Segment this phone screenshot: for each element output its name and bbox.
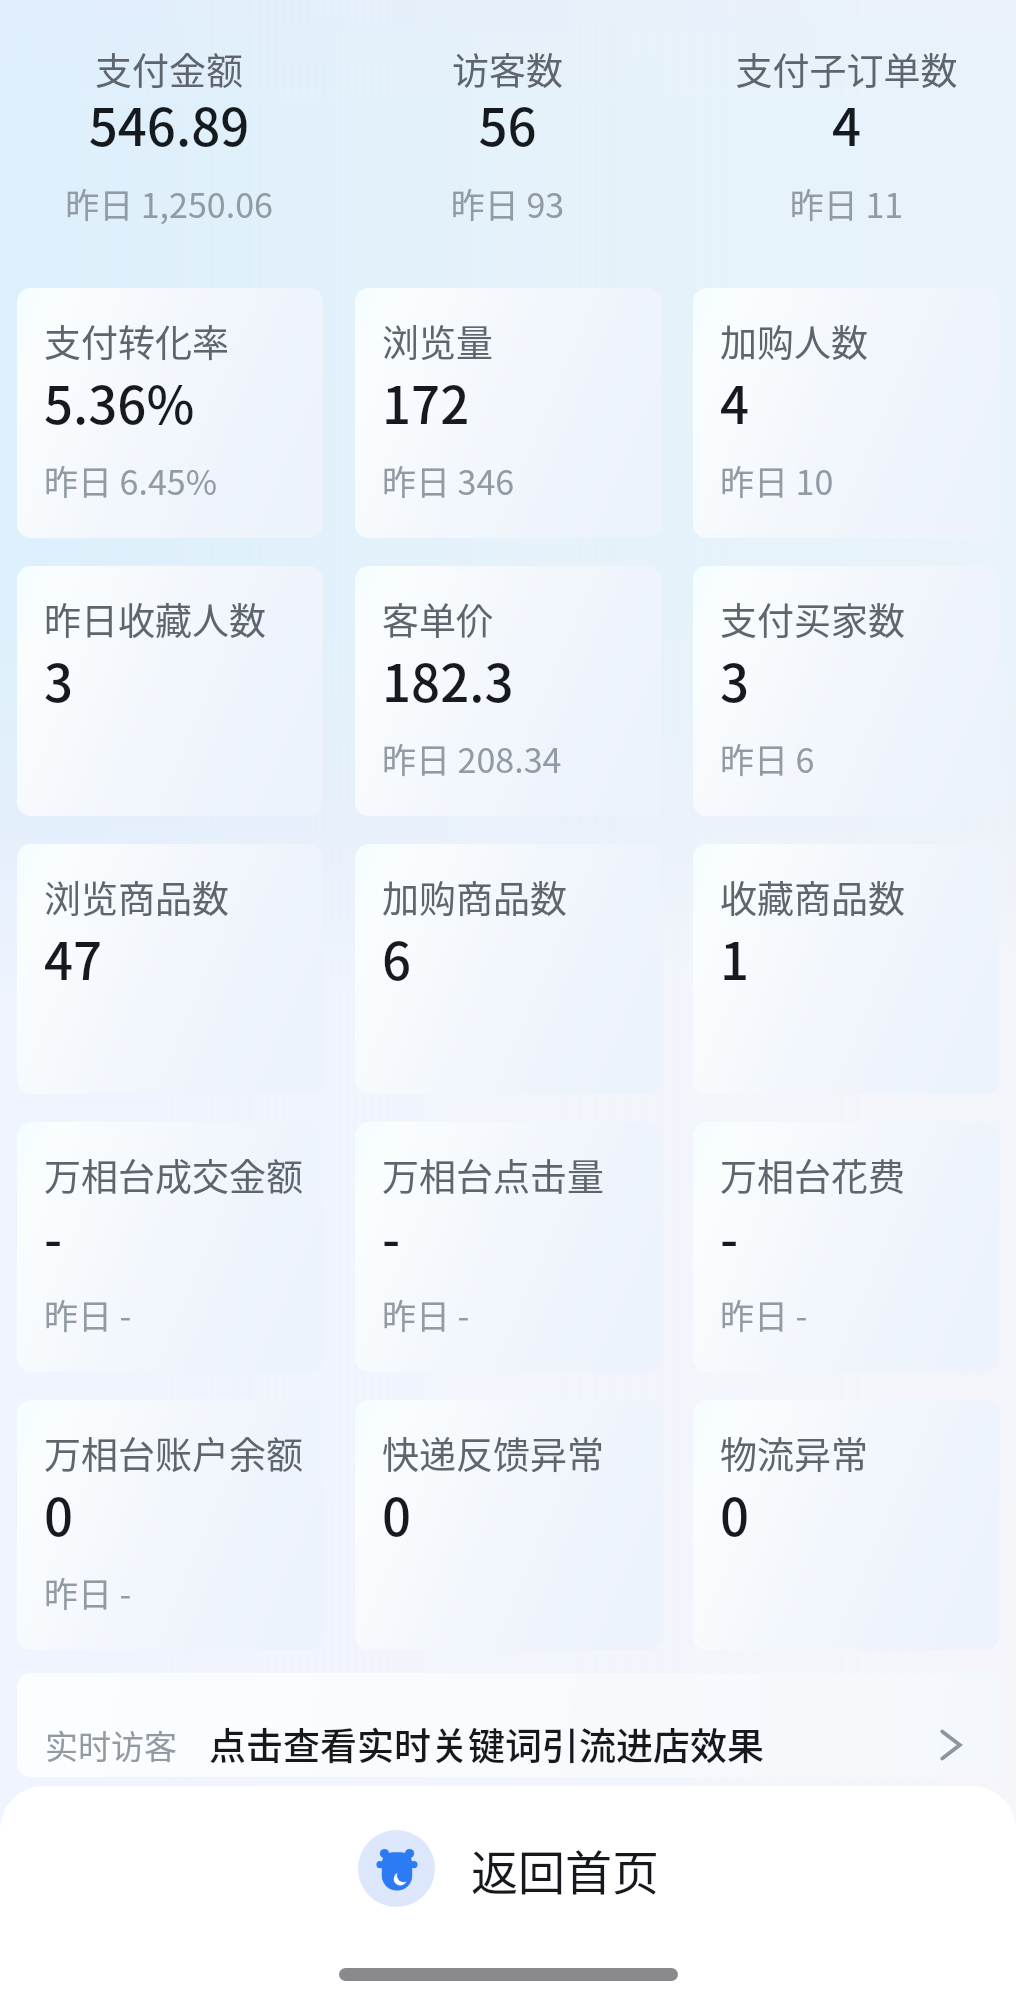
button[interactable]: 物流异常 (693, 1400, 999, 1650)
button[interactable]: 万相台点击量 (355, 1122, 661, 1372)
staticText: 0 (382, 1477, 412, 1551)
staticText: 4 (677, 87, 1016, 161)
staticText: 支付买家数 (720, 592, 905, 646)
button[interactable]: 浏览量 (355, 288, 661, 538)
staticText: 昨日 346 (382, 456, 515, 505)
staticText: 昨日 - (44, 1290, 132, 1339)
staticText: 收藏商品数 (720, 870, 905, 924)
staticText: 1 (720, 921, 750, 995)
button[interactable]: 支付转化率 (17, 288, 323, 538)
button[interactable]: 加购商品数 (355, 844, 661, 1094)
staticText: 昨日 - (382, 1290, 470, 1339)
staticText: 支付金额 (0, 42, 338, 96)
staticText: 昨日 6 (720, 734, 815, 783)
button[interactable]: 浏览商品数 (17, 844, 323, 1094)
staticText: 客单价 (382, 592, 493, 646)
staticText: 昨日 6.45% (44, 456, 217, 505)
staticText: 访客数 (338, 42, 677, 96)
staticText: - (44, 1199, 63, 1273)
staticText: 昨日 208.34 (382, 734, 562, 783)
staticText: 0 (720, 1477, 750, 1551)
staticText: 浏览商品数 (44, 870, 229, 924)
staticText: 昨日 10 (720, 456, 834, 505)
button[interactable]: 万相台花费 (693, 1122, 999, 1372)
staticText: 返回首页 (471, 1835, 659, 1903)
staticText: 546.89 (0, 87, 338, 161)
button[interactable]: 实时访客 (17, 1673, 999, 1777)
staticText: 万相台花费 (720, 1148, 905, 1202)
staticText: 3 (720, 643, 750, 717)
staticText: 物流异常 (720, 1426, 868, 1480)
button[interactable]: 支付金额 (0, 0, 338, 240)
staticText: 点击查看实时关键词引流进店效果 (209, 1717, 764, 1771)
staticText: 3 (44, 643, 74, 717)
staticText: 0 (44, 1477, 74, 1551)
staticText: 快递反馈异常 (382, 1426, 604, 1480)
staticText: 4 (720, 365, 750, 439)
staticText: 实时访客 (45, 1721, 177, 1769)
staticText: 浏览量 (382, 314, 493, 368)
other: 查看详情 (929, 1725, 969, 1765)
staticText: 昨日 1,250.06 (0, 179, 338, 228)
button[interactable]: 客单价 (355, 566, 661, 816)
staticText: 昨日 93 (338, 179, 677, 228)
button[interactable]: 加购人数 (693, 288, 999, 538)
staticText: 万相台点击量 (382, 1148, 604, 1202)
staticText: 5.36% (44, 365, 195, 439)
staticText: 47 (44, 921, 103, 995)
staticText: 昨日 - (720, 1290, 808, 1339)
button[interactable]: 返回首页 (348, 1824, 669, 1913)
button[interactable]: 快递反馈异常 (355, 1400, 661, 1650)
staticText: 加购人数 (720, 314, 868, 368)
button[interactable]: 昨日收藏人数 (17, 566, 323, 816)
staticText: - (382, 1199, 401, 1273)
staticText: 昨日 - (44, 1568, 132, 1617)
staticText: 加购商品数 (382, 870, 567, 924)
button[interactable]: 支付子订单数 (677, 0, 1016, 240)
staticText: 昨日收藏人数 (44, 592, 266, 646)
staticText: 支付转化率 (44, 314, 229, 368)
button[interactable]: 支付买家数 (693, 566, 999, 816)
button[interactable]: 万相台成交金额 (17, 1122, 323, 1372)
other: 返回首页 (358, 1830, 435, 1907)
staticText: 182.3 (382, 643, 514, 717)
button[interactable]: 访客数 (338, 0, 677, 240)
staticText: 昨日 11 (677, 179, 1016, 228)
staticText: 万相台成交金额 (44, 1148, 303, 1202)
staticText: 6 (382, 921, 412, 995)
staticText: 56 (338, 87, 677, 161)
staticText: 支付子订单数 (677, 42, 1016, 96)
button[interactable]: 收藏商品数 (693, 844, 999, 1094)
staticText: 172 (382, 365, 470, 439)
staticText: 万相台账户余额 (44, 1426, 303, 1480)
staticText: - (720, 1199, 739, 1273)
button[interactable]: 万相台账户余额 (17, 1400, 323, 1650)
